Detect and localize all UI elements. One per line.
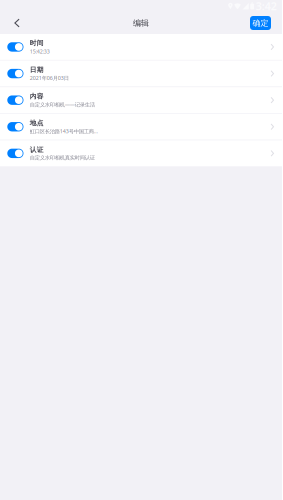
button[interactable]: 地点 [0, 114, 282, 140]
staticText: 内容 [30, 92, 44, 100]
button[interactable]: 时间 [0, 34, 282, 60]
staticText: 2021年06月03日 [30, 74, 69, 81]
staticText: 自定义水印相机真实时间认证 [30, 154, 95, 161]
staticText: 编辑 [133, 18, 149, 28]
button[interactable]: 确定 [250, 16, 271, 30]
staticText: 日期 [30, 66, 44, 74]
staticText: 确定 [252, 18, 268, 28]
staticText: 认证 [30, 146, 44, 154]
staticText: 15:42:33 [30, 48, 50, 55]
staticText: 地点 [30, 119, 44, 127]
button[interactable]: 日期 [0, 61, 282, 86]
button[interactable]: 认证 [0, 140, 282, 166]
staticText: 自定义水印相机——记录生活 [30, 101, 95, 108]
button[interactable]: 内容 [0, 87, 282, 113]
button[interactable]: Back [0, 12, 34, 34]
staticText: 时间 [30, 39, 44, 47]
staticText: 虹口区长治路143号中国工商… [30, 128, 98, 135]
